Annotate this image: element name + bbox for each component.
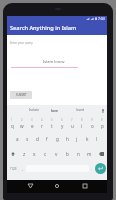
button[interactable]: Isolate xyxy=(29,108,40,112)
staticText: c xyxy=(44,151,47,157)
staticText: h xyxy=(66,136,69,142)
staticText: s xyxy=(26,136,29,142)
staticText: 4 xyxy=(41,118,43,122)
staticText: 7:04 xyxy=(98,16,105,21)
staticText: u xyxy=(71,123,74,129)
staticText: n xyxy=(77,151,80,157)
button[interactable]: m xyxy=(84,146,95,161)
staticText: i xyxy=(81,123,83,129)
staticText: 6 xyxy=(61,118,63,122)
staticText: y xyxy=(61,123,64,129)
staticText: f xyxy=(46,136,48,142)
button[interactable]: j xyxy=(72,131,82,146)
button[interactable]: g xyxy=(52,131,62,146)
staticText: t xyxy=(51,123,53,129)
button[interactable]: 7 xyxy=(67,116,77,131)
button[interactable]: v xyxy=(51,146,62,161)
staticText: p xyxy=(101,123,104,129)
staticText: 2 xyxy=(21,118,23,122)
staticText: o xyxy=(91,123,94,129)
button[interactable]: 9 xyxy=(87,116,97,131)
button[interactable]: b xyxy=(62,146,73,161)
button[interactable]: 6 xyxy=(57,116,67,131)
button[interactable]: a xyxy=(12,131,22,146)
staticText: Islam looov xyxy=(43,59,65,64)
staticText: q xyxy=(11,123,14,129)
button[interactable]: Enter xyxy=(95,163,106,174)
staticText: Search Anything in Islam xyxy=(10,24,77,32)
button[interactable]: 4 xyxy=(37,116,47,131)
staticText: . xyxy=(91,166,93,171)
staticText: g xyxy=(56,136,59,142)
button[interactable]: SUBMIT xyxy=(10,91,32,99)
staticText: l xyxy=(96,136,98,142)
staticText: SUBMIT xyxy=(16,93,27,97)
staticText: m xyxy=(87,151,92,157)
button[interactable]: 3 xyxy=(27,116,37,131)
button[interactable]: h xyxy=(62,131,72,146)
staticText: r xyxy=(41,123,43,129)
staticText: z xyxy=(23,151,26,157)
button[interactable]: z xyxy=(19,146,29,161)
button[interactable]: loved xyxy=(76,108,85,112)
staticText: e xyxy=(31,123,34,129)
button[interactable]: n xyxy=(73,146,84,161)
button[interactable]: Back xyxy=(25,181,35,191)
staticText: v xyxy=(55,151,58,157)
button[interactable]: Backspace xyxy=(95,146,107,161)
staticText: k xyxy=(86,136,89,142)
staticText: 0 xyxy=(101,118,103,122)
button[interactable]: 5 xyxy=(47,116,57,131)
button[interactable]: love xyxy=(51,108,59,113)
button[interactable]: l xyxy=(92,131,102,146)
staticText: 9 xyxy=(91,118,93,122)
staticText: 3 xyxy=(31,118,33,122)
staticText: Enter your query xyxy=(10,41,33,45)
button[interactable]: ?123 xyxy=(7,161,20,176)
button[interactable]: Home xyxy=(52,181,62,191)
staticText: 5 xyxy=(51,118,53,122)
staticText: d xyxy=(36,136,39,142)
staticText: j xyxy=(76,136,78,142)
staticText: a xyxy=(16,136,19,142)
button[interactable]: s xyxy=(22,131,32,146)
staticText: ?123 xyxy=(10,167,17,171)
staticText: w xyxy=(20,123,24,129)
button[interactable]: 8 xyxy=(77,116,87,131)
staticText: 7 xyxy=(71,118,73,122)
staticText: 1 xyxy=(11,118,13,122)
button[interactable]: d xyxy=(32,131,42,146)
button[interactable]: c xyxy=(40,146,51,161)
button[interactable]: x xyxy=(29,146,40,161)
button[interactable]: 2 xyxy=(17,116,27,131)
staticText: x xyxy=(33,151,36,157)
staticText: , xyxy=(22,166,24,171)
button[interactable]: , xyxy=(20,161,26,176)
button[interactable]: Recents xyxy=(80,181,90,191)
staticText: 8 xyxy=(81,118,83,122)
button[interactable]: 0 xyxy=(97,116,107,131)
button[interactable]: 1 xyxy=(7,116,17,131)
button[interactable]: Voice input xyxy=(101,107,105,115)
button[interactable]: k xyxy=(82,131,92,146)
button[interactable]: Shift xyxy=(7,146,19,161)
button[interactable]: f xyxy=(42,131,52,146)
staticText: b xyxy=(66,151,69,157)
